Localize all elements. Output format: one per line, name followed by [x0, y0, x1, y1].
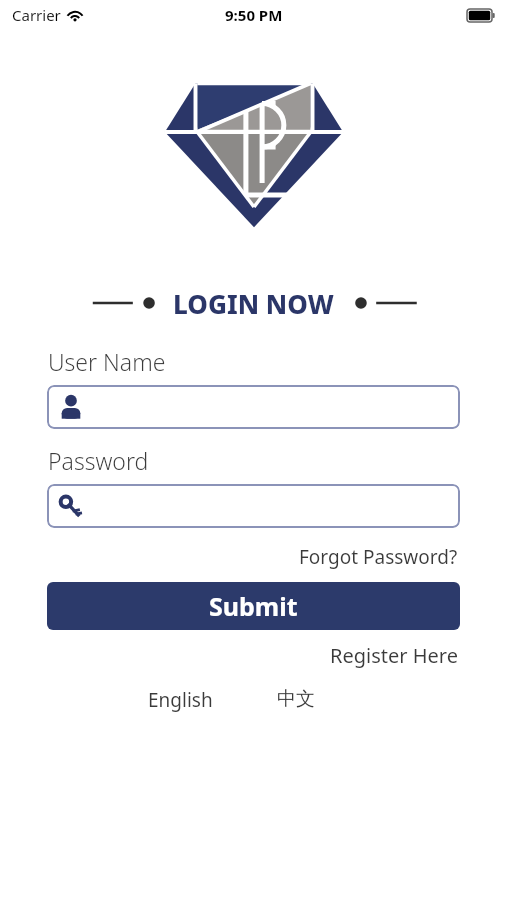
staticText: Forgot Password?	[299, 544, 458, 570]
staticText: Carrier	[12, 5, 61, 25]
button[interactable]: Submit	[47, 582, 460, 630]
staticText: Register Here	[330, 642, 458, 669]
staticText: Submit	[209, 589, 298, 623]
staticText: User Name	[48, 346, 166, 377]
staticText: 9:50 PM	[225, 5, 283, 25]
other: App logo	[164, 78, 344, 228]
staticText: LOGIN NOW	[173, 286, 334, 320]
staticText: Password	[48, 445, 149, 476]
button[interactable]: English	[142, 685, 219, 715]
button[interactable]: Forgot Password?	[297, 542, 460, 572]
button[interactable]: User name field	[47, 385, 460, 429]
button[interactable]: Register Here	[328, 640, 460, 671]
staticText: English	[148, 687, 213, 713]
button[interactable]: Password field	[47, 484, 460, 528]
staticText: 中文	[277, 687, 315, 711]
button[interactable]: 中文	[271, 685, 321, 713]
